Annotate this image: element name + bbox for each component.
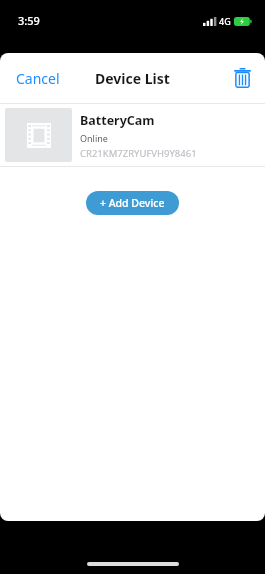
button[interactable]: + Add Device [86,191,179,215]
staticText: 3:59 [18,13,40,28]
staticText: Online [80,132,108,144]
staticText: CR21KM7ZRYUFVH9Y8461 [80,147,197,160]
staticText: + Add Device [100,196,165,210]
staticText: Cancel [16,69,60,88]
button[interactable]: Cancel [0,59,76,98]
staticText: Device List [95,69,170,88]
staticText: BatteryCam [80,112,155,129]
button[interactable]: Delete [220,58,265,98]
staticText: 4G [219,15,231,27]
button[interactable]: BatteryCam [0,104,265,166]
